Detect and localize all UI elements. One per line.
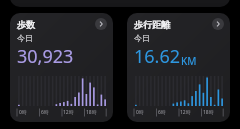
staticText: 歩行距離 xyxy=(134,19,170,30)
staticText: 0時 xyxy=(136,109,144,116)
staticText: 18時 xyxy=(86,109,97,116)
button[interactable]: 歩行距離 xyxy=(127,13,230,122)
staticText: 6時 xyxy=(158,109,166,116)
button[interactable]: 詳細を表示 xyxy=(95,18,107,30)
staticText: 歩数 xyxy=(17,19,35,30)
staticText: 0時 xyxy=(19,109,27,116)
staticText: 16.62 xyxy=(134,44,181,69)
staticText: 30,923 xyxy=(17,44,74,69)
staticText: 12時 xyxy=(63,109,74,116)
staticText: 18時 xyxy=(203,109,214,116)
staticText: KM xyxy=(181,54,197,68)
button[interactable] xyxy=(10,0,230,7)
staticText: 今日 xyxy=(17,33,33,43)
button[interactable]: 詳細を表示 xyxy=(212,18,224,30)
staticText: 6時 xyxy=(41,109,49,116)
button[interactable]: 歩数 xyxy=(10,13,113,122)
staticText: 12時 xyxy=(180,109,191,116)
staticText: 今日 xyxy=(134,33,150,43)
